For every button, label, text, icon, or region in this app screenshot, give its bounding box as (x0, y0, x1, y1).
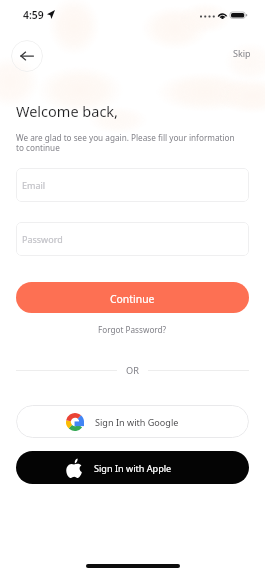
staticText: Password (22, 233, 63, 245)
staticText: OR (126, 364, 139, 377)
staticText: Forgot Password? (98, 324, 167, 335)
button[interactable]: Email (16, 168, 249, 202)
button[interactable]: Back (11, 40, 43, 72)
staticText: We are glad to see you again. Please fil… (16, 132, 240, 153)
button[interactable]: Password (16, 222, 249, 256)
button[interactable]: Skip (227, 43, 257, 63)
staticText: Skip (233, 47, 251, 59)
staticText: Email (22, 179, 46, 191)
button[interactable]: Continue (16, 282, 249, 313)
staticText: Continue (110, 292, 155, 306)
staticText: 4:59 (23, 8, 44, 22)
button[interactable]: Forgot Password? (92, 321, 173, 338)
staticText: Sign In with Apple (94, 462, 172, 474)
staticText: Welcome back, (16, 101, 118, 121)
button[interactable]: Sign In with Google (16, 405, 249, 438)
staticText: Sign In with Google (95, 416, 179, 428)
button[interactable]: Sign In with Apple (16, 451, 249, 484)
